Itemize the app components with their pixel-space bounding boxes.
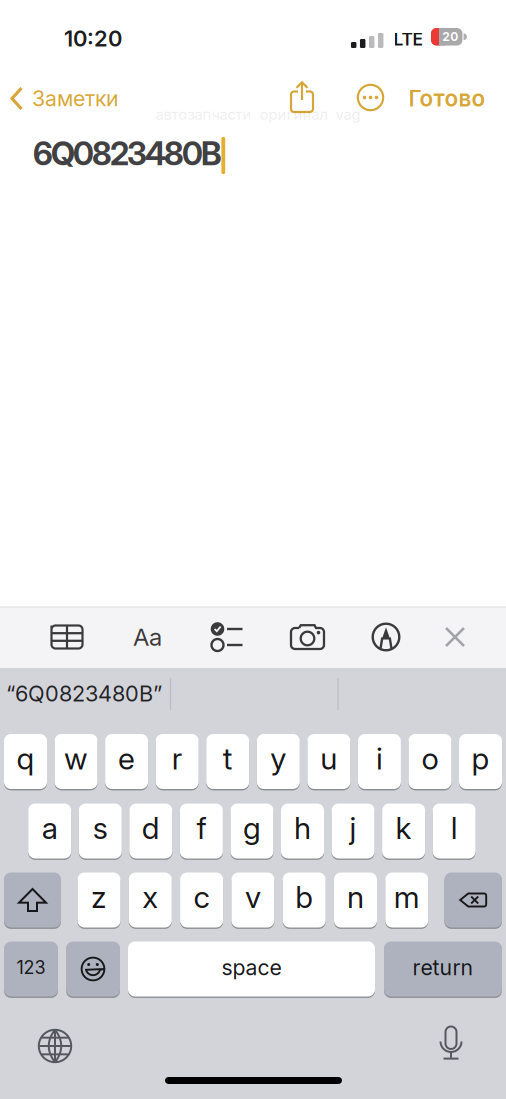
staticText: t bbox=[223, 740, 233, 777]
button[interactable]: x bbox=[129, 872, 172, 927]
staticText: u bbox=[320, 740, 337, 777]
button[interactable]: e bbox=[105, 734, 148, 789]
staticText: n bbox=[347, 879, 364, 915]
button[interactable]: v bbox=[231, 872, 274, 927]
staticText: c bbox=[194, 879, 210, 915]
staticText: w bbox=[64, 740, 88, 777]
button[interactable]: n bbox=[334, 872, 377, 927]
button[interactable]: r bbox=[156, 734, 199, 789]
staticText: v bbox=[245, 879, 261, 915]
button[interactable]: q bbox=[4, 734, 47, 789]
button[interactable]: j bbox=[332, 803, 375, 858]
button[interactable]: Камера bbox=[286, 618, 329, 656]
button[interactable]: Сменить клавиатуру bbox=[37, 1028, 73, 1064]
staticText: i bbox=[376, 740, 383, 777]
button[interactable]: Список bbox=[204, 615, 248, 659]
staticText: s bbox=[93, 810, 108, 846]
staticText: k bbox=[396, 810, 412, 846]
staticText: f bbox=[196, 810, 206, 846]
button[interactable]: Ещё bbox=[356, 83, 384, 111]
staticText: a bbox=[42, 810, 58, 846]
staticText: r bbox=[172, 740, 183, 777]
staticText: q bbox=[16, 740, 34, 777]
staticText: x bbox=[142, 879, 158, 915]
button[interactable]: space bbox=[128, 941, 375, 996]
button[interactable]: t bbox=[206, 734, 249, 789]
staticText: return bbox=[412, 955, 473, 980]
staticText: “6Q0823480B” bbox=[6, 680, 162, 707]
button[interactable]: Эмодзи bbox=[66, 941, 120, 996]
staticText: h bbox=[294, 810, 311, 846]
button[interactable]: Shift bbox=[4, 872, 61, 927]
staticText: j bbox=[350, 810, 357, 846]
button[interactable]: m bbox=[385, 872, 428, 927]
staticText: l bbox=[451, 810, 458, 846]
button[interactable]: u bbox=[307, 734, 350, 789]
button[interactable]: k bbox=[382, 803, 425, 858]
staticText: 123 bbox=[16, 957, 45, 978]
button[interactable]: a bbox=[28, 803, 71, 858]
staticText: y bbox=[270, 740, 286, 777]
button[interactable]: Форматирование bbox=[125, 615, 169, 659]
staticText: p bbox=[471, 740, 489, 777]
staticText: e bbox=[118, 740, 135, 777]
button[interactable]: i bbox=[358, 734, 401, 789]
staticText: 6Q0823480B bbox=[33, 134, 222, 173]
button[interactable]: l bbox=[433, 803, 476, 858]
staticText: b bbox=[295, 879, 313, 915]
button[interactable]: Диктовка bbox=[439, 1025, 463, 1065]
staticText: Заметки bbox=[32, 86, 119, 111]
staticText: LTE bbox=[393, 29, 422, 50]
button[interactable]: z bbox=[77, 872, 120, 927]
button[interactable]: b bbox=[283, 872, 326, 927]
staticText: space bbox=[221, 955, 281, 980]
button[interactable]: Таблица bbox=[45, 615, 89, 659]
staticText: d bbox=[142, 810, 160, 846]
button[interactable]: p bbox=[459, 734, 502, 789]
button[interactable]: h bbox=[281, 803, 324, 858]
button[interactable]: y bbox=[257, 734, 300, 789]
button[interactable]: g bbox=[230, 803, 273, 858]
button[interactable]: o bbox=[408, 734, 451, 789]
staticText: z bbox=[91, 879, 107, 915]
staticText: o bbox=[421, 740, 438, 777]
button[interactable]: Назад к списку заметок bbox=[10, 76, 180, 120]
button[interactable]: Подставить «6Q0823480B» bbox=[6, 668, 226, 718]
button[interactable]: Разметка bbox=[371, 622, 400, 651]
staticText: g bbox=[243, 810, 261, 846]
button[interactable]: 123 bbox=[4, 941, 58, 996]
button[interactable]: s bbox=[79, 803, 122, 858]
button[interactable]: Готово bbox=[408, 76, 485, 120]
staticText: 20 bbox=[442, 29, 458, 44]
staticText: m bbox=[394, 879, 420, 915]
button[interactable]: Поделиться bbox=[289, 81, 314, 114]
staticText: Готово bbox=[408, 85, 485, 112]
button[interactable]: return bbox=[384, 941, 502, 996]
button[interactable]: Удалить bbox=[444, 872, 502, 927]
button[interactable]: f bbox=[180, 803, 223, 858]
button[interactable]: Закрыть панель bbox=[443, 625, 467, 649]
staticText: Aa bbox=[133, 622, 162, 651]
button[interactable]: d bbox=[129, 803, 172, 858]
button[interactable]: c bbox=[180, 872, 223, 927]
staticText: автозапчасти оригинал vag bbox=[155, 106, 360, 123]
button[interactable]: w bbox=[55, 734, 98, 789]
staticText: 10:20 bbox=[64, 25, 122, 52]
